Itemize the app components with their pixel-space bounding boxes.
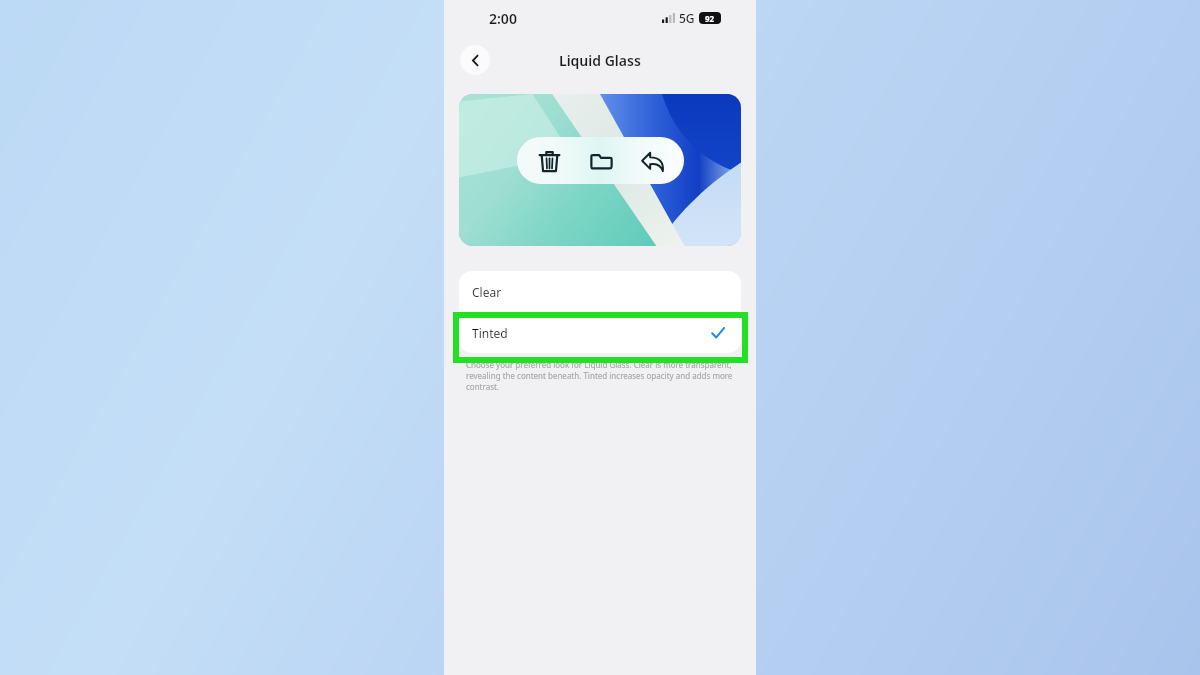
- button[interactable]: Delete: [529, 141, 569, 181]
- button[interactable]: Back: [460, 45, 490, 75]
- button[interactable]: Tinted: [459, 312, 741, 353]
- staticText: Clear: [472, 284, 502, 300]
- button[interactable]: Folder: [581, 141, 621, 181]
- staticText: 92: [705, 13, 715, 24]
- staticText: Choose your preferred look for Liquid Gl…: [466, 359, 734, 392]
- staticText: Liquid Glass: [559, 51, 641, 70]
- staticText: Tinted: [472, 325, 508, 341]
- staticText: 5G: [679, 10, 695, 26]
- staticText: 2:00: [489, 9, 517, 28]
- button[interactable]: Clear: [459, 271, 741, 312]
- button[interactable]: Reply: [632, 141, 672, 181]
